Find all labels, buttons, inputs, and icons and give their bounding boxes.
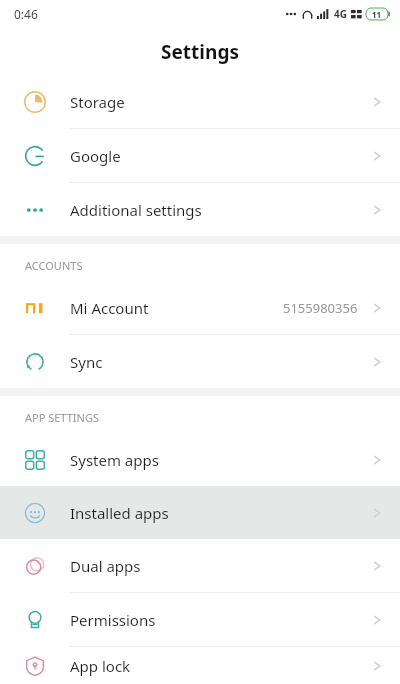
staticText: Additional settings: [70, 200, 202, 220]
button[interactable]: Mi Account: [0, 281, 400, 334]
staticText: App lock: [70, 656, 131, 676]
staticText: 4G: [334, 7, 347, 21]
staticText: 0:46: [14, 6, 38, 22]
staticText: Dual apps: [70, 556, 141, 576]
staticText: Sync: [70, 352, 103, 372]
button[interactable]: Additional settings: [0, 183, 400, 236]
button[interactable]: Sync: [0, 335, 400, 388]
button[interactable]: Storage: [0, 75, 400, 128]
staticText: Installed apps: [70, 503, 169, 523]
button[interactable]: Permissions: [0, 593, 400, 646]
staticText: Permissions: [70, 610, 156, 630]
staticText: System apps: [70, 450, 159, 470]
staticText: APP SETTINGS: [25, 410, 99, 425]
staticText: Settings: [161, 39, 239, 65]
staticText: Mi Account: [70, 298, 149, 318]
button[interactable]: App lock: [0, 647, 400, 684]
staticText: Google: [70, 146, 121, 166]
staticText: 11: [372, 9, 382, 20]
button[interactable]: Dual apps: [0, 539, 400, 592]
staticText: Storage: [70, 92, 125, 112]
button[interactable]: Installed apps: [0, 486, 400, 539]
button[interactable]: System apps: [0, 433, 400, 486]
staticText: 5155980356: [283, 299, 358, 317]
staticText: ACCOUNTS: [25, 258, 83, 273]
button[interactable]: Google: [0, 129, 400, 182]
